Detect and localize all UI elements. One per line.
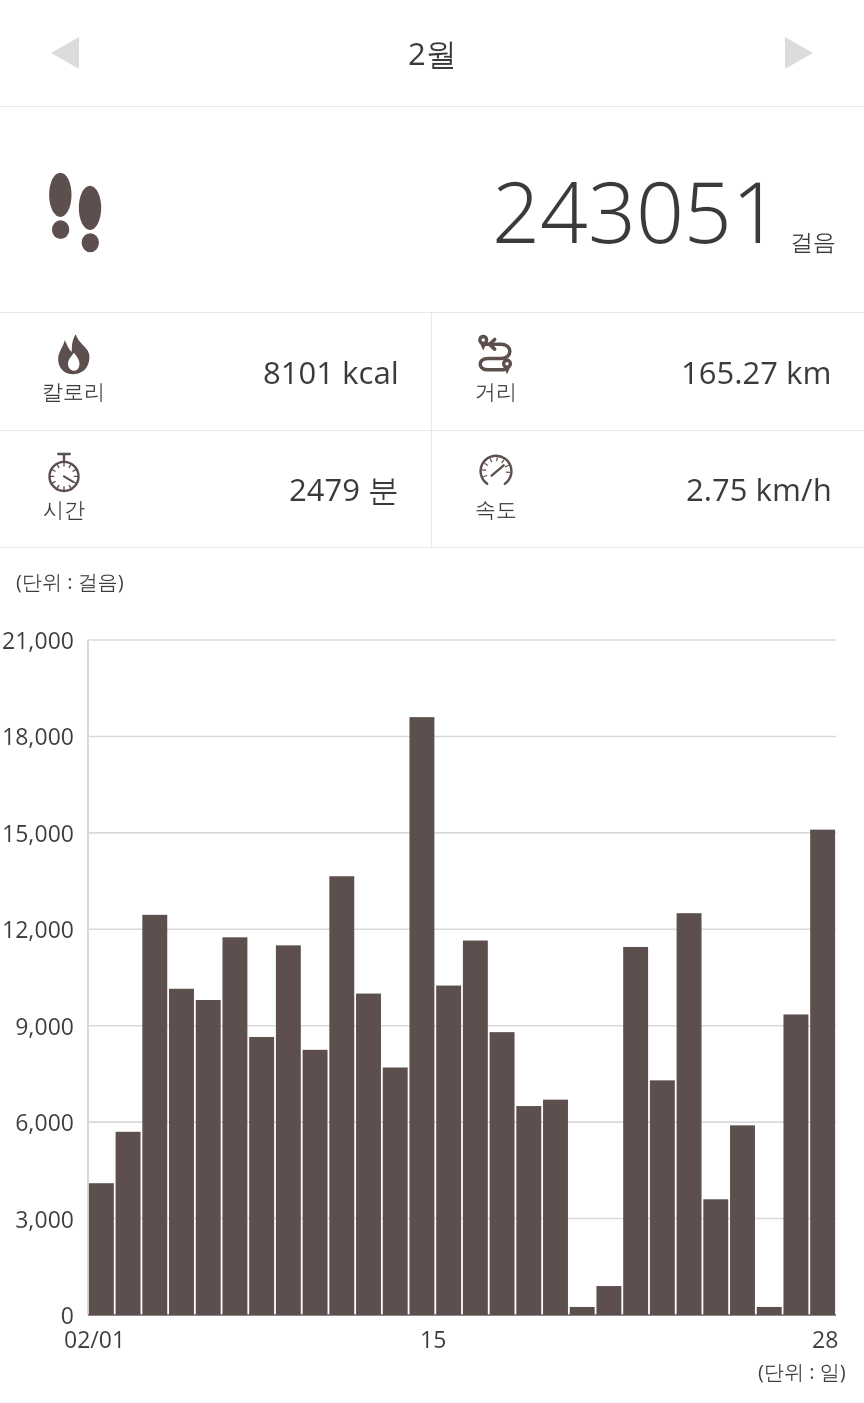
- staticText: 2.75 km/h: [686, 468, 832, 510]
- button[interactable]: 2월: [408, 32, 457, 74]
- staticText: 9,000: [0, 1010, 74, 1041]
- staticText: 21,000: [0, 624, 74, 655]
- staticText: (단위 : 걸음): [16, 568, 124, 595]
- staticText: 28: [812, 1323, 839, 1354]
- button[interactable]: Next month: [756, 13, 842, 93]
- staticText: 걸음: [790, 228, 836, 257]
- button[interactable]: 시간: [0, 431, 431, 547]
- staticText: 속도: [475, 497, 517, 523]
- staticText: 0: [0, 1299, 74, 1330]
- staticText: 칼로리: [42, 379, 105, 405]
- staticText: 165.27 km: [681, 351, 832, 393]
- staticText: 243051: [492, 153, 780, 267]
- button[interactable]: 칼로리: [0, 313, 431, 430]
- staticText: 18,000: [0, 720, 74, 751]
- staticText: 02/01: [64, 1323, 126, 1354]
- staticText: 15: [420, 1323, 447, 1354]
- button[interactable]: 속도: [432, 431, 864, 547]
- staticText: 12,000: [0, 913, 74, 944]
- button[interactable]: 243051: [0, 107, 864, 312]
- staticText: 6,000: [0, 1106, 74, 1137]
- staticText: 8101 kcal: [263, 351, 399, 393]
- button[interactable]: Previous month: [22, 13, 108, 93]
- staticText: 2월: [408, 32, 457, 74]
- staticText: 2479 분: [289, 468, 399, 510]
- staticText: 시간: [43, 497, 85, 523]
- button[interactable]: 거리: [432, 313, 864, 430]
- staticText: 3,000: [0, 1203, 74, 1234]
- staticText: (단위 : 일): [758, 1358, 846, 1385]
- staticText: 거리: [475, 379, 517, 405]
- button[interactable]: [0, 0, 864, 1403]
- staticText: 15,000: [0, 817, 74, 848]
